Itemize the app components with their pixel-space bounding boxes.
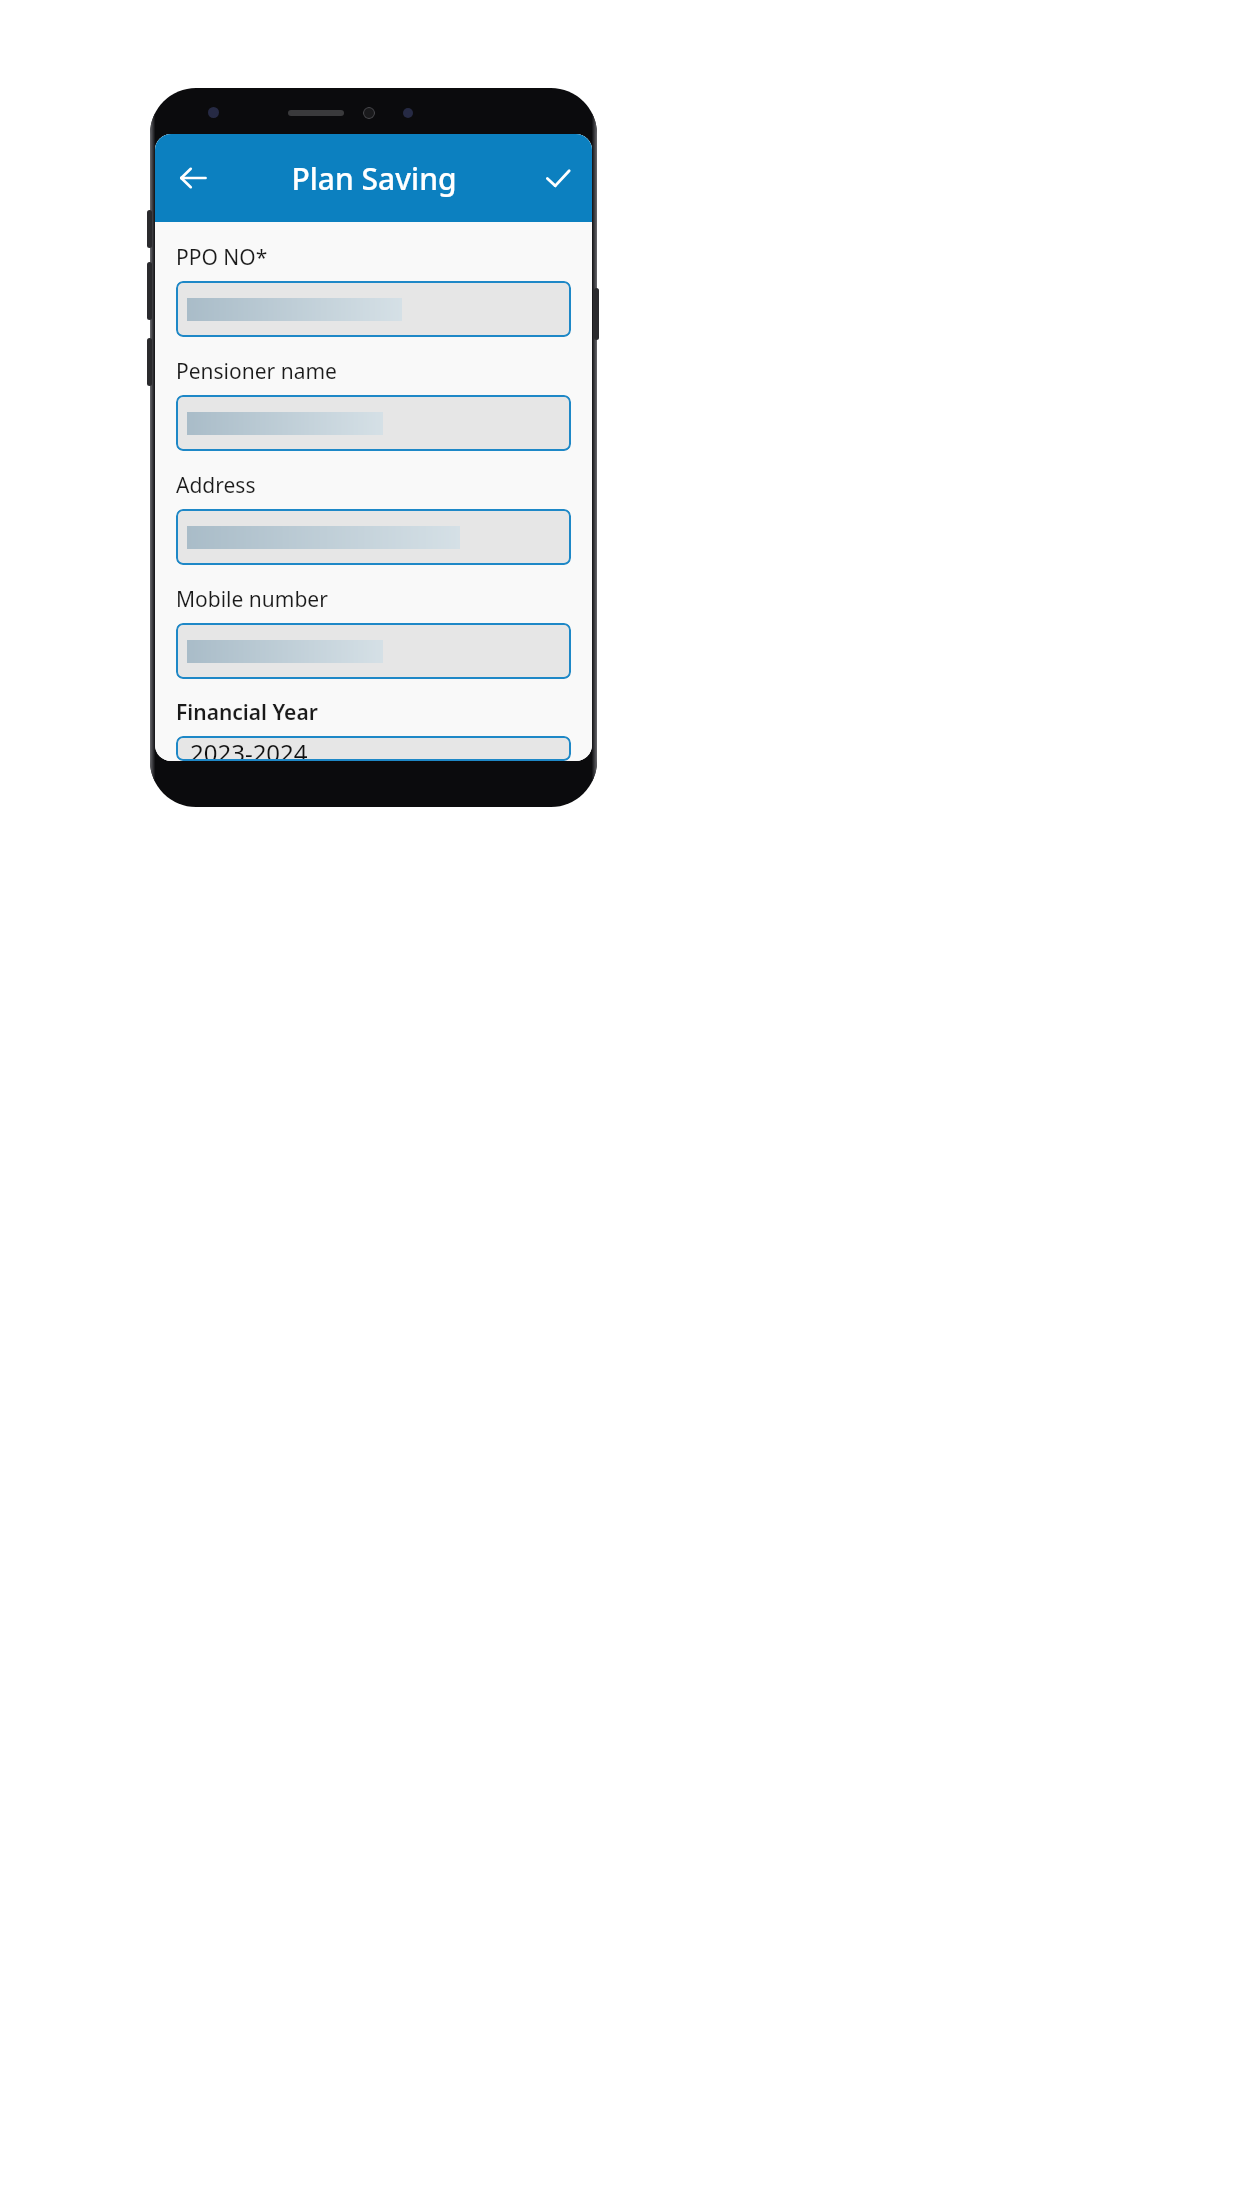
staticText: Plan Saving [291,158,457,199]
button[interactable]: Back [169,154,217,202]
button[interactable]: Save [534,154,582,202]
button[interactable]: Address [176,509,571,565]
staticText: PPO NO* [176,243,268,272]
staticText: Address [176,471,256,500]
button[interactable]: PPO number [176,281,571,337]
staticText: Mobile number [176,585,328,614]
button[interactable]: Pensioner name [176,395,571,451]
staticText: 2023-2024 [190,736,308,761]
button[interactable]: Mobile number [176,623,571,679]
button[interactable]: 2023-2024 [176,736,571,761]
staticText: Financial Year [176,698,318,727]
staticText: Pensioner name [176,357,337,386]
